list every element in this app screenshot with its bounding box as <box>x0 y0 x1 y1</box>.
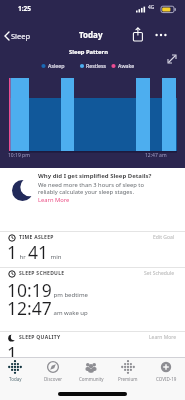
staticText: Why did I get simplified Sleep Details? <box>38 172 152 180</box>
staticText: Awake <box>118 62 135 69</box>
staticText: Discover <box>44 376 63 382</box>
button[interactable]: COVID-19 <box>149 358 183 386</box>
staticText: 1:25 <box>18 4 31 13</box>
staticText: min <box>49 253 62 261</box>
staticText: pm bedtime <box>52 291 88 299</box>
staticText: Premium <box>118 376 138 382</box>
staticText: 12:47 <box>7 296 52 320</box>
staticText: Community <box>79 376 104 382</box>
staticText: reliably calculate your sleep stages. <box>38 188 134 196</box>
button[interactable]: Today <box>0 358 32 386</box>
button[interactable]: Set Schedule <box>0 0 31 7</box>
button[interactable] <box>164 51 180 67</box>
staticText: TIME ASLEEP <box>19 234 54 241</box>
staticText: Today <box>9 376 22 382</box>
staticText: SLEEP QUALITY <box>19 334 61 341</box>
staticText: SLEEP SCHEDULE <box>19 270 65 277</box>
staticText: We need more than 3 hours of sleep to <box>38 181 144 189</box>
button[interactable]: Community <box>74 358 108 386</box>
staticText: 41 <box>28 240 49 264</box>
staticText: 12:47 am <box>145 152 167 159</box>
button[interactable] <box>130 26 146 44</box>
button[interactable]: Learn More <box>0 0 28 7</box>
staticText: am wake up <box>52 309 88 317</box>
button[interactable]: Edit Goal <box>0 0 22 7</box>
button[interactable]: Discover <box>36 358 70 386</box>
staticText: Sleep Pattern <box>69 48 108 56</box>
staticText: COVID-19 <box>156 376 177 382</box>
staticText: 1 <box>7 240 18 264</box>
staticText: Asleep <box>48 62 65 69</box>
staticText: 10:19 pm <box>8 152 30 159</box>
staticText: 1 <box>7 341 18 365</box>
staticText: Restless <box>86 62 107 69</box>
staticText: hr <box>18 253 28 261</box>
button[interactable]: Learn More <box>0 0 32 8</box>
staticText: Today <box>79 29 103 40</box>
button[interactable] <box>152 28 172 42</box>
staticText: 10:19 <box>7 278 52 302</box>
button[interactable]: Premium <box>111 358 145 386</box>
staticText: Sleep <box>11 31 31 41</box>
staticText: 4G <box>148 4 155 11</box>
button[interactable]: Sleep <box>3 27 31 45</box>
